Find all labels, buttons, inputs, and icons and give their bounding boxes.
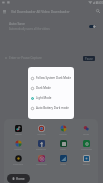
staticText: Instagram [36, 163, 47, 166]
button[interactable]: Gmail [77, 121, 95, 136]
staticText: TikTok [15, 133, 22, 136]
staticText: Auto Battery Dark mode [36, 106, 69, 110]
staticText: Gmail [83, 133, 89, 136]
staticText: Maps [60, 163, 66, 166]
staticText: Enter or Pause Capture [9, 56, 83, 60]
staticText: Excel [60, 148, 66, 151]
button[interactable]: Chrome [32, 121, 50, 136]
button[interactable]: Photos [9, 136, 27, 151]
button[interactable]: Twitter [77, 151, 95, 166]
button[interactable]: WhatsApp [77, 136, 95, 151]
button[interactable]: TikTok [9, 121, 27, 136]
staticText: Pause [85, 57, 93, 61]
button[interactable]: Photos [54, 121, 72, 136]
staticText: Chrome [37, 133, 46, 136]
staticText: Photos [59, 133, 67, 136]
button[interactable]: Dark Mode [28, 83, 74, 93]
button[interactable]: Snapseed [9, 151, 27, 166]
button[interactable]: Enter or Pause Capture [0, 52, 103, 64]
button[interactable]: Auto Battery Dark mode [28, 103, 74, 113]
button[interactable]: Maps [54, 151, 72, 166]
staticText: Facebook [36, 148, 46, 151]
staticText: Auto Save [9, 21, 25, 26]
staticText: Photos [14, 148, 22, 151]
staticText: Snapseed [13, 163, 23, 166]
staticText: 6:00 [97, 1, 103, 5]
button[interactable]: Facebook [32, 136, 50, 151]
staticText: Follow System Dark Mode [36, 76, 72, 80]
button[interactable]: Open navigation menu [0, 6, 9, 16]
staticText: Home [16, 177, 25, 181]
button[interactable]: Auto Save switch [88, 22, 97, 31]
button[interactable]: Instagram [32, 151, 50, 166]
button[interactable]: Search [93, 6, 102, 16]
staticText: Automatically saves all the videos [9, 27, 50, 31]
staticText: Light Mode [36, 96, 52, 100]
staticText: WhatsApp [81, 148, 92, 151]
button[interactable]: Excel [54, 136, 72, 151]
staticText: Dark Mode [36, 86, 51, 90]
button[interactable]: Auto Save [0, 19, 103, 33]
staticText: Twitter [82, 163, 90, 166]
button[interactable]: Home [7, 174, 30, 183]
button[interactable]: Pause [83, 56, 95, 61]
staticText: Vid Downloader All Video Downloader [11, 9, 93, 13]
button[interactable]: Light Mode [28, 93, 74, 103]
button[interactable]: Follow System Dark Mode [28, 73, 74, 83]
